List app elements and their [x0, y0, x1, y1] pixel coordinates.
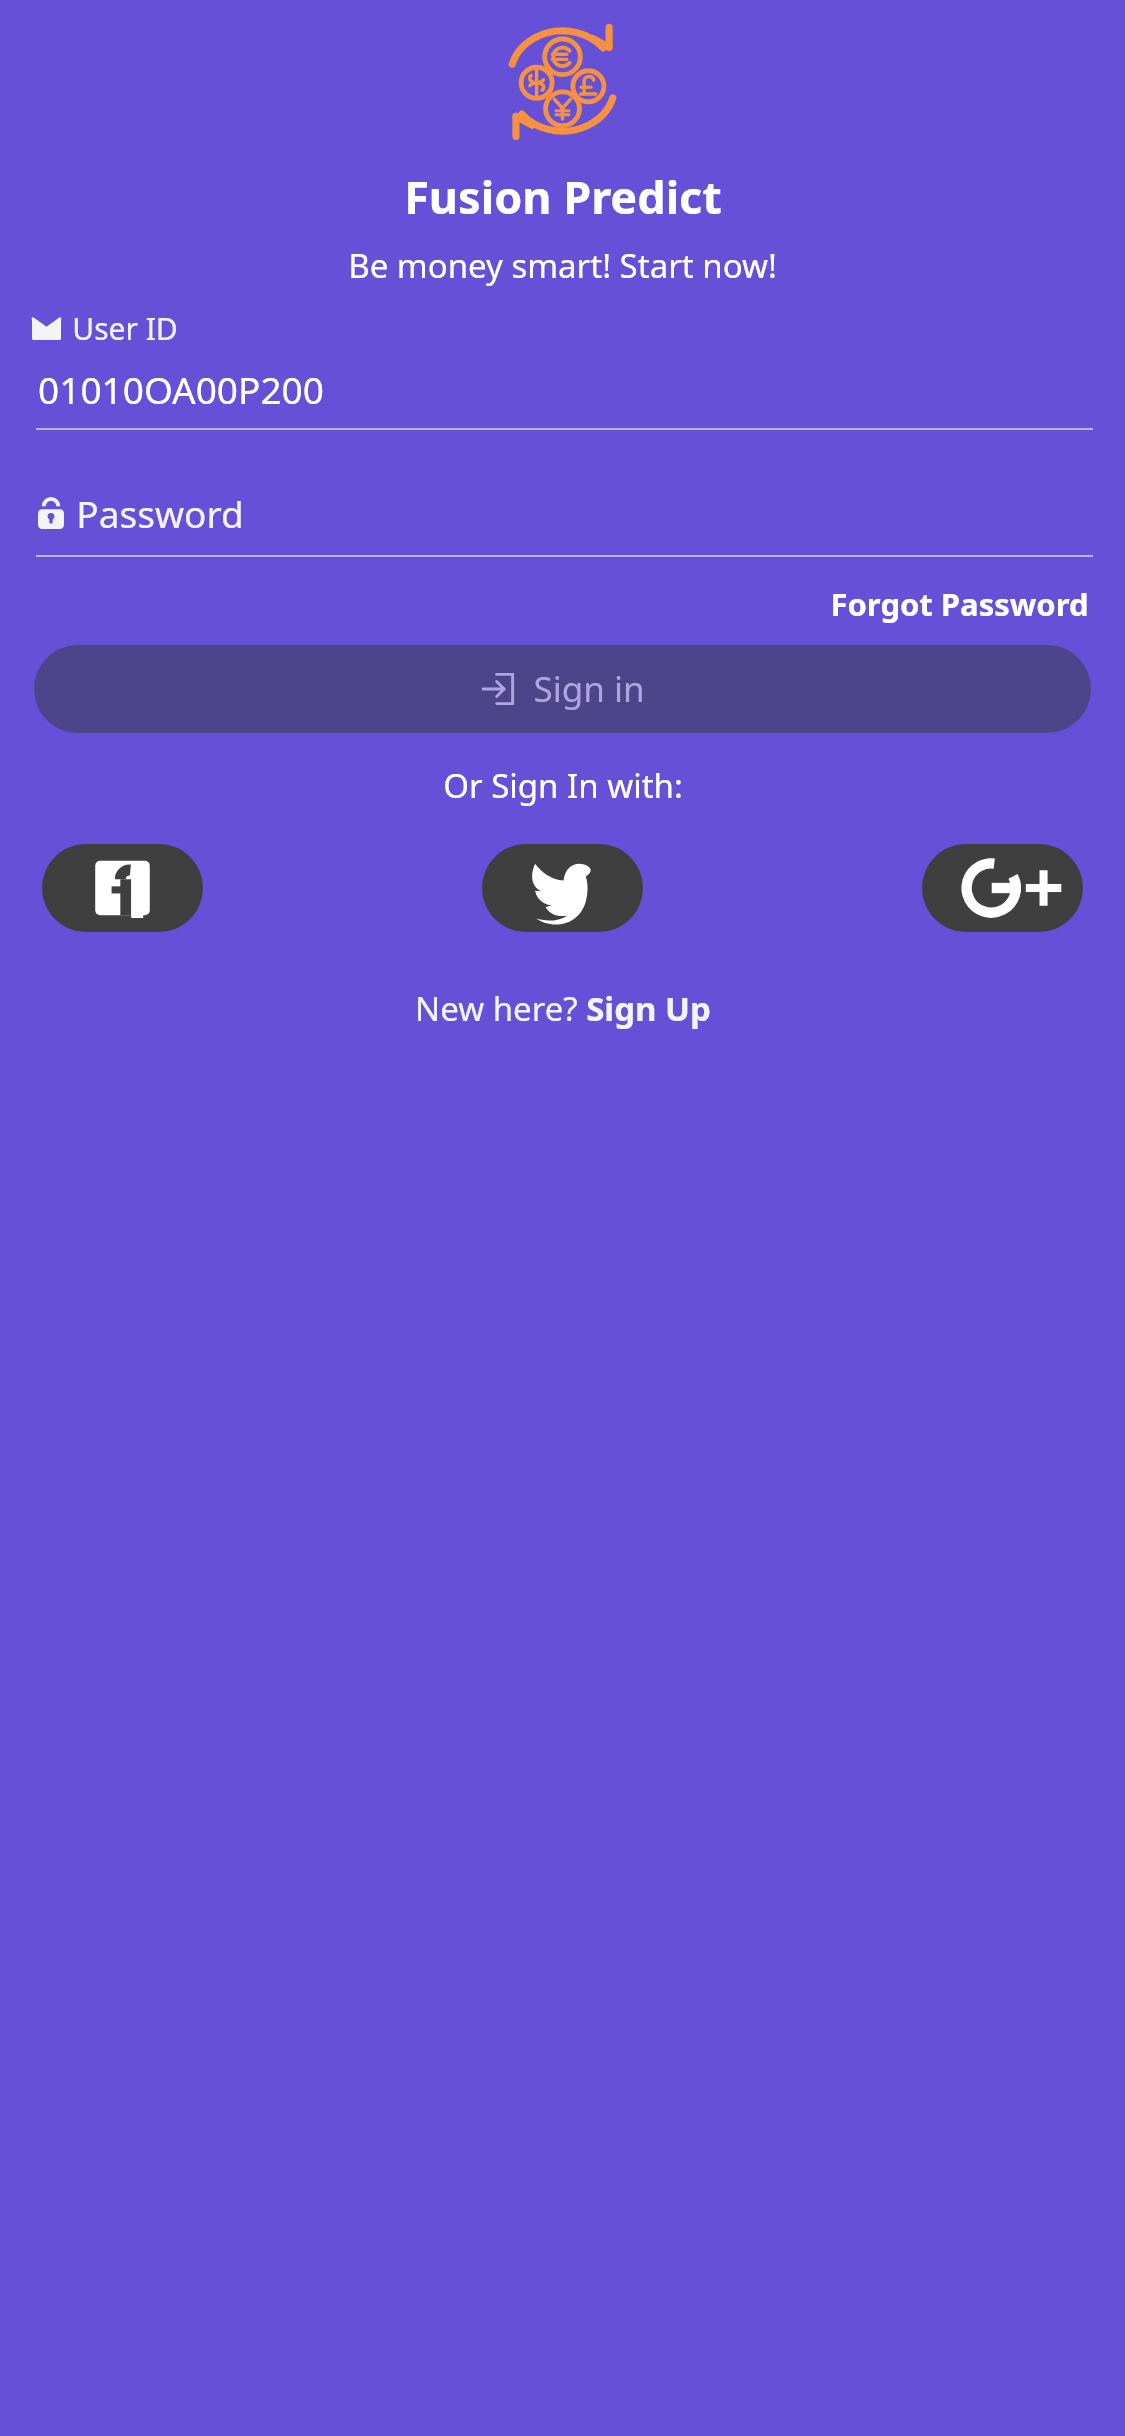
button[interactable]: Sign in with Facebook: [42, 844, 203, 932]
button[interactable]: Sign in with Google Plus: [922, 844, 1083, 932]
button[interactable]: Sign in: [34, 645, 1091, 733]
staticText: Forgot Password: [830, 583, 1089, 625]
button[interactable]: New here? Sign Up: [409, 980, 717, 1037]
staticText: Sign in: [533, 665, 645, 713]
staticText: Be money smart! Start now!: [348, 243, 777, 288]
staticText: Or Sign In with:: [443, 763, 683, 808]
staticText: Fusion Predict: [404, 166, 722, 227]
button[interactable]: Forgot Password: [826, 579, 1093, 629]
button[interactable]: Sign in with Twitter: [482, 844, 643, 932]
staticText: Password: [76, 488, 244, 538]
button[interactable]: 01010OA00P200: [38, 364, 1093, 414]
staticText: User ID: [72, 308, 178, 349]
staticText: New here? Sign Up: [415, 986, 711, 1031]
staticText: 01010OA00P200: [38, 364, 324, 414]
button[interactable]: Password: [38, 488, 244, 538]
